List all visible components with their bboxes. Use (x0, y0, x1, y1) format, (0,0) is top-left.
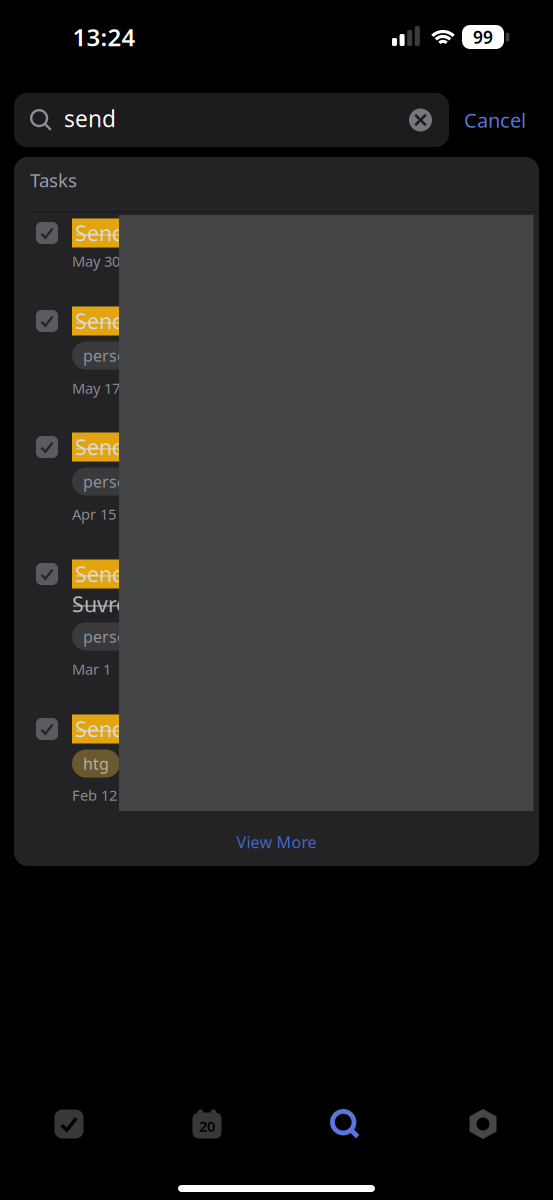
staticText: Cancel (464, 107, 526, 133)
staticText: Tasks (30, 168, 77, 192)
staticText: Feb 12 (72, 785, 117, 805)
staticText: Mar 1 (72, 659, 111, 679)
staticText: 13:24 (72, 21, 135, 53)
button[interactable]: Completed (36, 310, 58, 332)
button[interactable]: Completed (36, 222, 58, 244)
button[interactable]: Completed (36, 563, 58, 585)
button[interactable]: Tasks (54, 1109, 83, 1138)
staticText: Send money to landlord (75, 560, 317, 588)
button[interactable]: Send money to landlord Suvrojeet for ren… (22, 554, 531, 709)
button[interactable]: Send money to landlord, personal, comple… (22, 302, 531, 428)
staticText: Send money to landlord (75, 219, 317, 247)
button[interactable]: Completed (36, 718, 58, 740)
staticText: htg (83, 753, 109, 774)
button[interactable]: Calendar (192, 1109, 221, 1138)
staticText: Send money to landlord (75, 307, 317, 335)
staticText: Apr 15 (72, 504, 116, 524)
staticText: personal (83, 626, 150, 647)
button[interactable]: Send money to landlord, htg, completed F… (22, 709, 531, 805)
button[interactable]: Cancel (464, 107, 526, 133)
button[interactable]: View More (236, 831, 316, 853)
staticText: personal (83, 345, 150, 366)
staticText: May 17 (72, 378, 120, 398)
button[interactable]: Clear text (409, 108, 432, 131)
staticText: Suvrojeet for rent (72, 590, 249, 618)
button[interactable]: Completed (36, 436, 58, 458)
staticText: 99 (473, 25, 493, 48)
staticText: View More (236, 831, 316, 853)
button[interactable]: Send money to landlord, personal, comple… (22, 428, 531, 554)
staticText: personal (83, 471, 150, 492)
button[interactable]: Search (330, 1109, 360, 1139)
staticText: Send money to landlord (75, 433, 317, 461)
button[interactable]: Settings (469, 1109, 496, 1139)
staticText: Send money to landlord (75, 715, 317, 743)
button[interactable]: Send money to landlord, completed May 30 (22, 214, 531, 310)
staticText: 20 (199, 1116, 215, 1136)
staticText: May 30 (72, 251, 120, 271)
staticText: send (64, 103, 116, 133)
